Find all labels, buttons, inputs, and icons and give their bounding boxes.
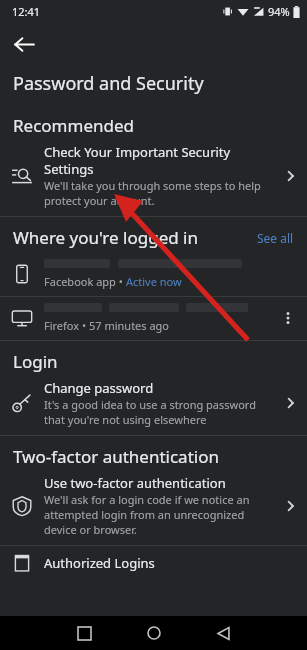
button[interactable]: Back [204,616,242,650]
button[interactable]: Authorized Logins [0,546,307,574]
staticText: Recommended [13,114,134,137]
staticText: We'll ask for a login code if we notice … [44,492,250,537]
button[interactable]: More options [273,303,303,333]
button[interactable]: See all [254,227,297,249]
staticText: It's a good idea to use a strong passwor… [44,397,256,427]
staticText: Login [13,350,58,373]
button[interactable]: Firefox • 57 minutes ago [0,297,307,340]
button[interactable]: Back [4,24,44,64]
staticText: 12:41 [12,4,41,19]
staticText: Change password [44,379,154,397]
staticText: Password and Security [13,71,204,96]
staticText: Firefox • 57 minutes ago [44,318,170,333]
staticText: See all [257,230,294,246]
button[interactable]: Facebook app [0,253,307,296]
staticText: Authorized Logins [44,554,301,572]
staticText: Active now [126,274,182,289]
button[interactable]: Home [135,616,173,650]
staticText: 94% [268,4,290,19]
staticText: Two-factor authentication [13,445,219,468]
staticText: Use two-factor authentication [44,474,226,492]
button[interactable]: Recent apps [65,616,103,650]
button[interactable]: Check Your Important Security Settings [0,140,307,216]
staticText: • [116,274,126,289]
staticText: Facebook app [44,274,116,289]
button[interactable]: Change password [0,376,307,435]
staticText: Where you're logged in [13,226,254,249]
button[interactable]: Use two-factor authentication [0,471,307,545]
staticText: We'll take you through some steps to hel… [44,178,261,208]
staticText: Check Your Important Security Settings [44,143,231,178]
